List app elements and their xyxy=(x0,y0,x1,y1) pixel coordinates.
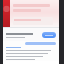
button[interactable]: Promotion xyxy=(3,0,10,27)
button[interactable] xyxy=(13,17,53,25)
button[interactable]: Continue xyxy=(42,32,56,38)
button[interactable]: Selected option xyxy=(25,42,56,45)
